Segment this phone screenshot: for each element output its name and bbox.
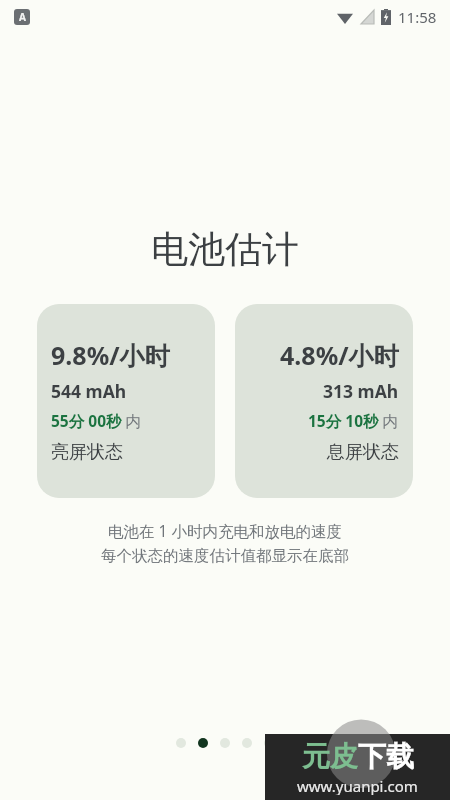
staticText: 下载 xyxy=(358,739,414,774)
staticText: A xyxy=(19,10,26,24)
staticText: 元皮 xyxy=(302,739,358,774)
staticText: 55分 00秒 内 xyxy=(51,410,142,431)
button[interactable]: Page 4 xyxy=(242,738,252,748)
staticText: 11:58 xyxy=(398,7,437,27)
staticText: 4.8%/小时 xyxy=(280,338,399,372)
staticText: 电池估计 xyxy=(151,226,299,273)
staticText: 15分 10秒 内 xyxy=(308,410,399,431)
staticText: www.yuanpi.com xyxy=(297,776,418,795)
button[interactable]: Page 1 xyxy=(176,738,186,748)
button[interactable]: Page 2 xyxy=(198,738,208,748)
button[interactable]: Page 5 xyxy=(264,738,274,748)
staticText: 亮屏状态 xyxy=(51,441,123,464)
staticText: 息屏状态 xyxy=(327,441,399,464)
staticText: 9.8%/小时 xyxy=(51,338,170,372)
staticText: 313 mAh xyxy=(323,379,399,403)
staticText: 电池在 1 小时内充电和放电的速度 xyxy=(108,520,342,541)
button[interactable]: 4.8%/小时 xyxy=(235,304,413,498)
staticText: 每个状态的速度估计值都显示在底部 xyxy=(101,546,349,566)
button[interactable]: Page 3 xyxy=(220,738,230,748)
staticText: 544 mAh xyxy=(51,379,127,403)
button[interactable]: 9.8%/小时 xyxy=(37,304,215,498)
